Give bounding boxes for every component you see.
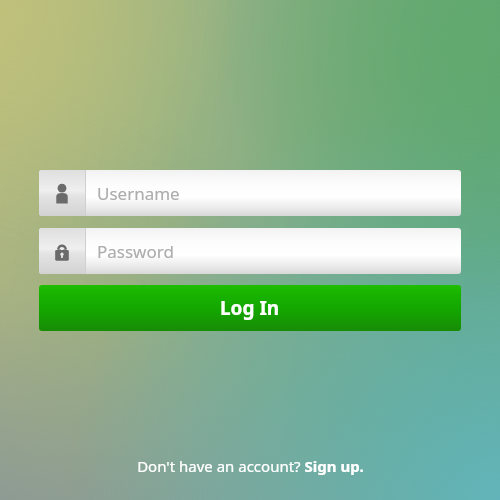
staticText: Username — [97, 182, 180, 205]
button[interactable]: Log In — [39, 285, 461, 331]
button[interactable]: Password field — [39, 228, 461, 274]
staticText: Log In — [220, 295, 280, 321]
staticText: Password — [97, 240, 174, 263]
button[interactable]: Username field — [39, 170, 461, 216]
staticText: Don't have an account? Sign up. — [137, 456, 364, 476]
button[interactable]: Don't have an account? Sign up. — [133, 452, 368, 480]
